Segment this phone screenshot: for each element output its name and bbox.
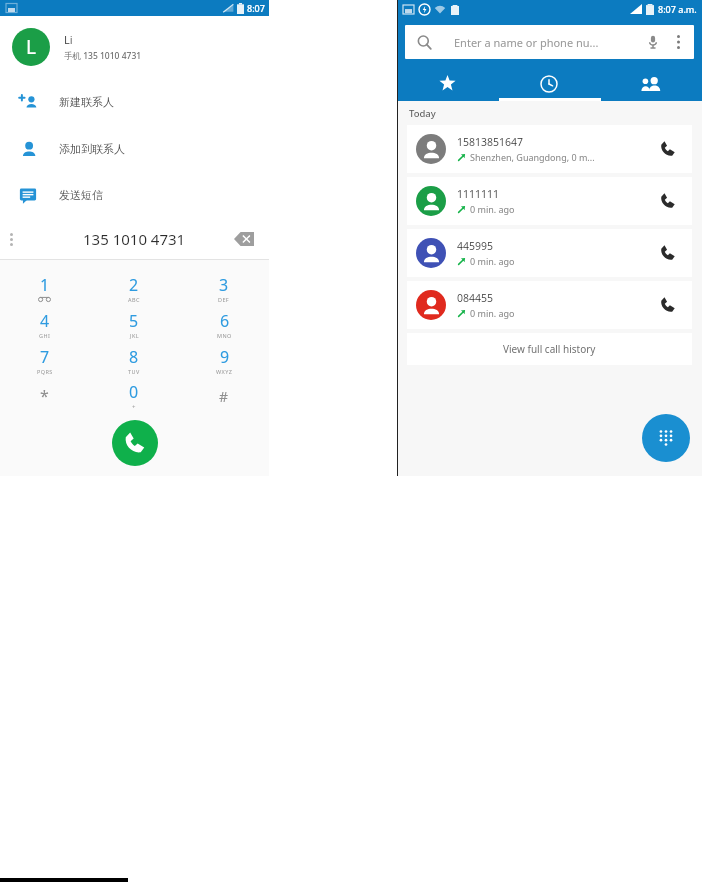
button[interactable]: 5 (89, 306, 179, 342)
button[interactable]: 1 (0, 270, 89, 306)
staticText: 0 min. ago (470, 203, 515, 215)
staticText: 8:07 (247, 2, 265, 14)
staticText: DEF (218, 296, 230, 303)
button[interactable]: 发送短信 (0, 172, 269, 218)
staticText: 0 min. ago (470, 255, 515, 267)
button[interactable]: More options (666, 30, 690, 54)
button[interactable]: Enter a name or phone nu... (405, 25, 694, 59)
staticText: 1111111 (457, 187, 500, 201)
staticText: Enter a name or phone nu... (454, 35, 599, 50)
button[interactable]: 3 (179, 270, 269, 306)
staticText: Today (409, 107, 436, 120)
button[interactable]: 7 (0, 342, 89, 378)
staticText: 9 (220, 346, 230, 368)
staticText: 手机 135 1010 4731 (64, 50, 142, 62)
button[interactable]: 6 (179, 306, 269, 342)
button[interactable]: More options (0, 218, 22, 260)
button[interactable]: 15813851647 (407, 125, 692, 173)
staticText: WXYZ (216, 368, 233, 375)
staticText: 8 (129, 346, 139, 368)
button[interactable]: 2 (89, 270, 179, 306)
button[interactable]: 新建联系人 (0, 78, 269, 125)
staticText: Shenzhen, Guangdong, 0 m... (470, 151, 595, 163)
button[interactable]: 0 (89, 378, 179, 414)
staticText: MNO (217, 332, 232, 339)
button[interactable]: Call back (648, 181, 688, 221)
staticText: TUV (128, 368, 140, 375)
button[interactable]: Contacts (600, 66, 702, 101)
button[interactable]: 4 (0, 306, 89, 342)
button[interactable]: Call (112, 420, 158, 466)
staticText: 084455 (457, 291, 494, 305)
staticText: JKL (130, 332, 139, 339)
staticText: GHI (39, 332, 51, 339)
button[interactable]: 8 (89, 342, 179, 378)
staticText: 0 min. ago (470, 307, 515, 319)
staticText: 135 1010 4731 (83, 229, 186, 249)
staticText: 5 (129, 310, 139, 332)
button[interactable]: L (0, 16, 269, 78)
button[interactable]: Call back (648, 233, 688, 273)
staticText: 8:07 a.m. (658, 3, 697, 15)
button[interactable]: 添加到联系人 (0, 125, 269, 172)
staticText: ABC (128, 296, 140, 303)
staticText: 添加到联系人 (59, 142, 125, 156)
staticText: View full call history (503, 342, 596, 356)
staticText: + (132, 403, 136, 411)
staticText: 4 (40, 310, 50, 332)
button[interactable]: Favorites (397, 66, 498, 101)
button[interactable]: Call back (648, 129, 688, 169)
button[interactable]: Voice search (640, 29, 666, 55)
staticText: 3 (219, 274, 229, 296)
button[interactable]: * (0, 378, 89, 414)
staticText: L (26, 34, 36, 60)
button[interactable]: View full call history (407, 333, 692, 365)
staticText: 7 (40, 346, 50, 368)
button[interactable]: 9 (179, 342, 269, 378)
button[interactable]: Recents (498, 66, 600, 101)
staticText: PQRS (37, 368, 53, 375)
staticText: 0 (129, 381, 139, 403)
staticText: Li (64, 32, 73, 47)
staticText: 445995 (457, 239, 494, 253)
button[interactable]: Dialpad (642, 414, 690, 462)
button[interactable]: 1111111 (407, 177, 692, 225)
button[interactable]: # (179, 378, 269, 414)
button[interactable]: 084455 (407, 281, 692, 329)
staticText: # (219, 387, 229, 406)
staticText: 2 (129, 274, 139, 296)
staticText: 15813851647 (457, 135, 524, 149)
staticText: 1 (40, 274, 50, 296)
button[interactable]: Call back (648, 285, 688, 325)
button[interactable]: Backspace (231, 226, 257, 252)
staticText: 发送短信 (59, 188, 103, 202)
staticText: 6 (220, 310, 230, 332)
button[interactable]: 445995 (407, 229, 692, 277)
staticText: * (40, 385, 49, 407)
staticText: 新建联系人 (59, 95, 114, 109)
